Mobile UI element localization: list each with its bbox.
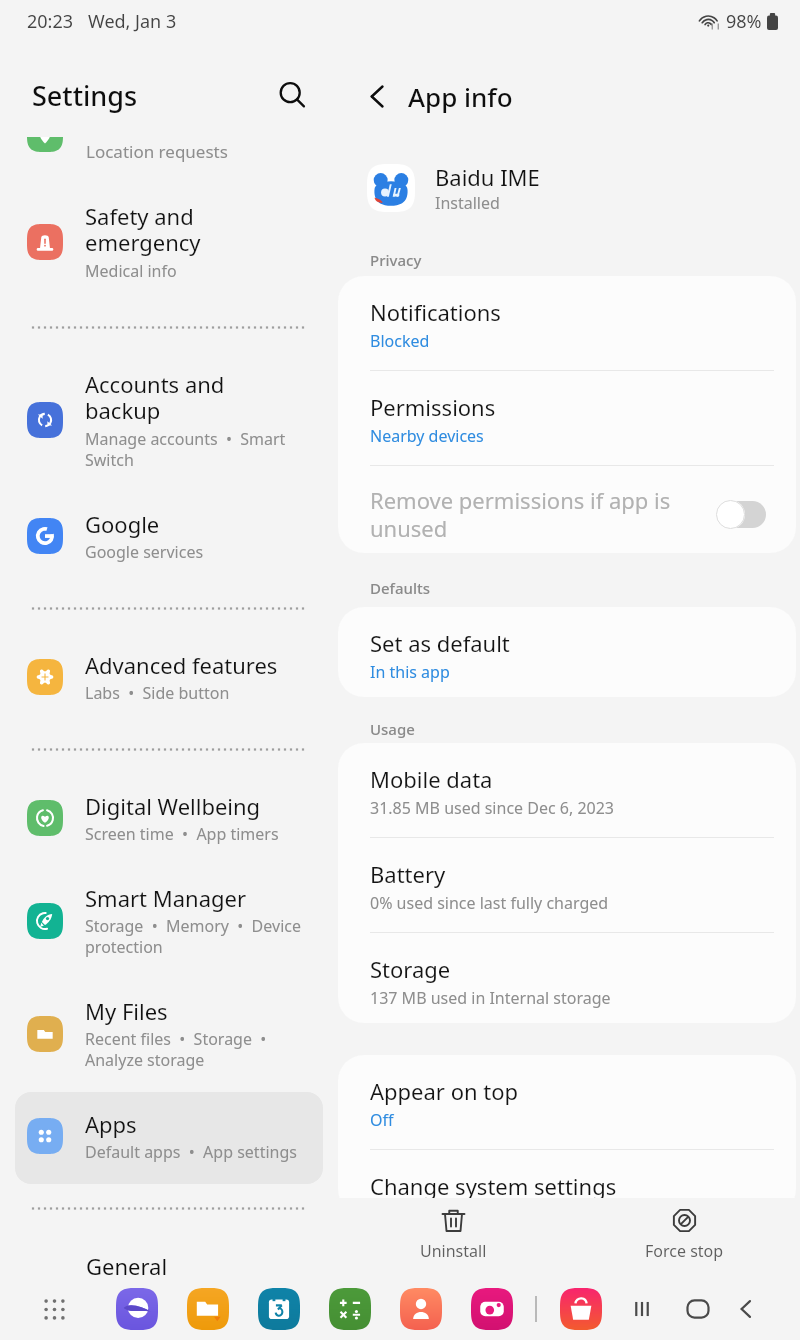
- staticText: Storage • Memory • Device protection: [85, 915, 301, 958]
- staticText: 137 MB used in Internal storage: [370, 987, 611, 1009]
- staticText: Apps: [85, 1109, 137, 1139]
- staticText: Accounts and backup: [85, 369, 225, 426]
- staticText: Remove permissions if app is unused: [370, 485, 716, 543]
- staticText: Privacy: [370, 250, 422, 270]
- button[interactable]: Mobile data: [338, 743, 796, 838]
- staticText: Screen time • App timers: [85, 823, 279, 845]
- button[interactable]: Search: [270, 73, 316, 119]
- button[interactable]: Notifications: [338, 276, 796, 371]
- staticText: Manage accounts • Smart Switch: [85, 428, 286, 471]
- button[interactable]: Recents: [623, 1290, 661, 1328]
- button[interactable]: Google: [15, 492, 323, 584]
- staticText: Advanced features: [85, 650, 278, 680]
- staticText: Google: [85, 509, 160, 539]
- button[interactable]: My Files: [15, 979, 323, 1092]
- staticText: 0% used since last fully charged: [370, 892, 609, 914]
- button[interactable]: Back: [727, 1290, 765, 1328]
- staticText: General: [86, 1251, 168, 1281]
- staticText: My Files: [85, 996, 168, 1026]
- button[interactable]: camera: [471, 1288, 513, 1330]
- staticText: Notifications: [370, 297, 501, 327]
- button[interactable]: Digital Wellbeing: [15, 774, 323, 866]
- staticText: Set as default: [370, 628, 510, 658]
- button[interactable]: Advanced features: [15, 633, 323, 725]
- button[interactable]: Uninstall: [338, 1198, 569, 1272]
- staticText: Installed: [435, 192, 500, 214]
- staticText: Blocked: [370, 330, 430, 352]
- staticText: Usage: [370, 719, 415, 739]
- staticText: Recent files • Storage • Analyze storage: [85, 1028, 267, 1071]
- button[interactable]: Permissions: [338, 371, 796, 466]
- staticText: Labs • Side button: [85, 682, 230, 704]
- button[interactable]: Back: [355, 74, 399, 118]
- staticText: Storage: [370, 954, 451, 984]
- button[interactable]: browser: [116, 1288, 158, 1330]
- button[interactable]: Safety and emergency: [15, 184, 323, 303]
- staticText: Change system settings: [370, 1171, 617, 1201]
- button[interactable]: Storage: [338, 933, 796, 1023]
- staticText: Baidu IME: [435, 162, 540, 192]
- button[interactable]: Apps: [15, 1092, 323, 1184]
- button[interactable]: calc: [329, 1288, 371, 1330]
- button[interactable]: All apps: [38, 1293, 70, 1325]
- staticText: Uninstall: [420, 1240, 487, 1262]
- staticText: Off: [370, 1109, 394, 1131]
- staticText: Google services: [85, 541, 204, 563]
- button[interactable]: Accounts and backup: [15, 352, 323, 492]
- button[interactable]: Battery: [338, 838, 796, 933]
- staticText: Defaults: [370, 578, 431, 598]
- button[interactable]: Change system settings: [338, 1150, 796, 1215]
- staticText: Medical info: [85, 260, 177, 282]
- staticText: Smart Manager: [85, 883, 246, 913]
- staticText: 98%: [726, 9, 762, 34]
- staticText: Settings: [32, 77, 138, 114]
- staticText: App info: [408, 79, 513, 114]
- staticText: Location requests: [86, 140, 228, 163]
- staticText: Permissions: [370, 392, 496, 422]
- button[interactable]: Home: [679, 1290, 717, 1328]
- staticText: Appear on top: [370, 1076, 519, 1106]
- staticText: In this app: [370, 661, 450, 683]
- staticText: Digital Wellbeing: [85, 791, 261, 821]
- staticText: Wed, Jan 3: [88, 9, 177, 34]
- staticText: Force stop: [645, 1240, 724, 1262]
- button[interactable]: Remove permissions if app is unused: [338, 466, 796, 553]
- button[interactable]: Force stop: [569, 1198, 800, 1272]
- staticText: Battery: [370, 859, 446, 889]
- button[interactable]: Smart Manager: [15, 866, 323, 979]
- staticText: Nearby devices: [370, 425, 484, 447]
- staticText: 31.85 MB used since Dec 6, 2023: [370, 797, 615, 819]
- staticText: Mobile data: [370, 764, 493, 794]
- staticText: Safety and emergency: [85, 201, 201, 258]
- button[interactable]: Set as default: [338, 607, 796, 697]
- button[interactable]: store: [560, 1288, 602, 1330]
- staticText: 20:23: [27, 9, 74, 34]
- staticText: Default apps • App settings: [85, 1141, 297, 1163]
- button[interactable]: contacts: [400, 1288, 442, 1330]
- button[interactable]: files: [187, 1288, 229, 1330]
- button[interactable]: Appear on top: [338, 1055, 796, 1150]
- button[interactable]: cal: [258, 1288, 300, 1330]
